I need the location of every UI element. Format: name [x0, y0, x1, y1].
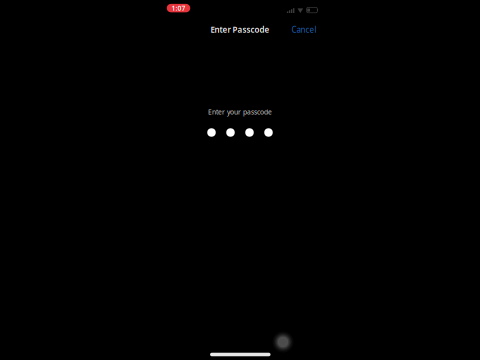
staticText: 1:07: [171, 4, 185, 13]
staticText: Cancel: [291, 24, 316, 35]
button[interactable]: Return to call: [167, 4, 190, 12]
button[interactable]: Cancel: [287, 22, 321, 37]
staticText: Enter Passcode: [210, 24, 269, 35]
staticText: Enter your passcode: [208, 108, 272, 116]
